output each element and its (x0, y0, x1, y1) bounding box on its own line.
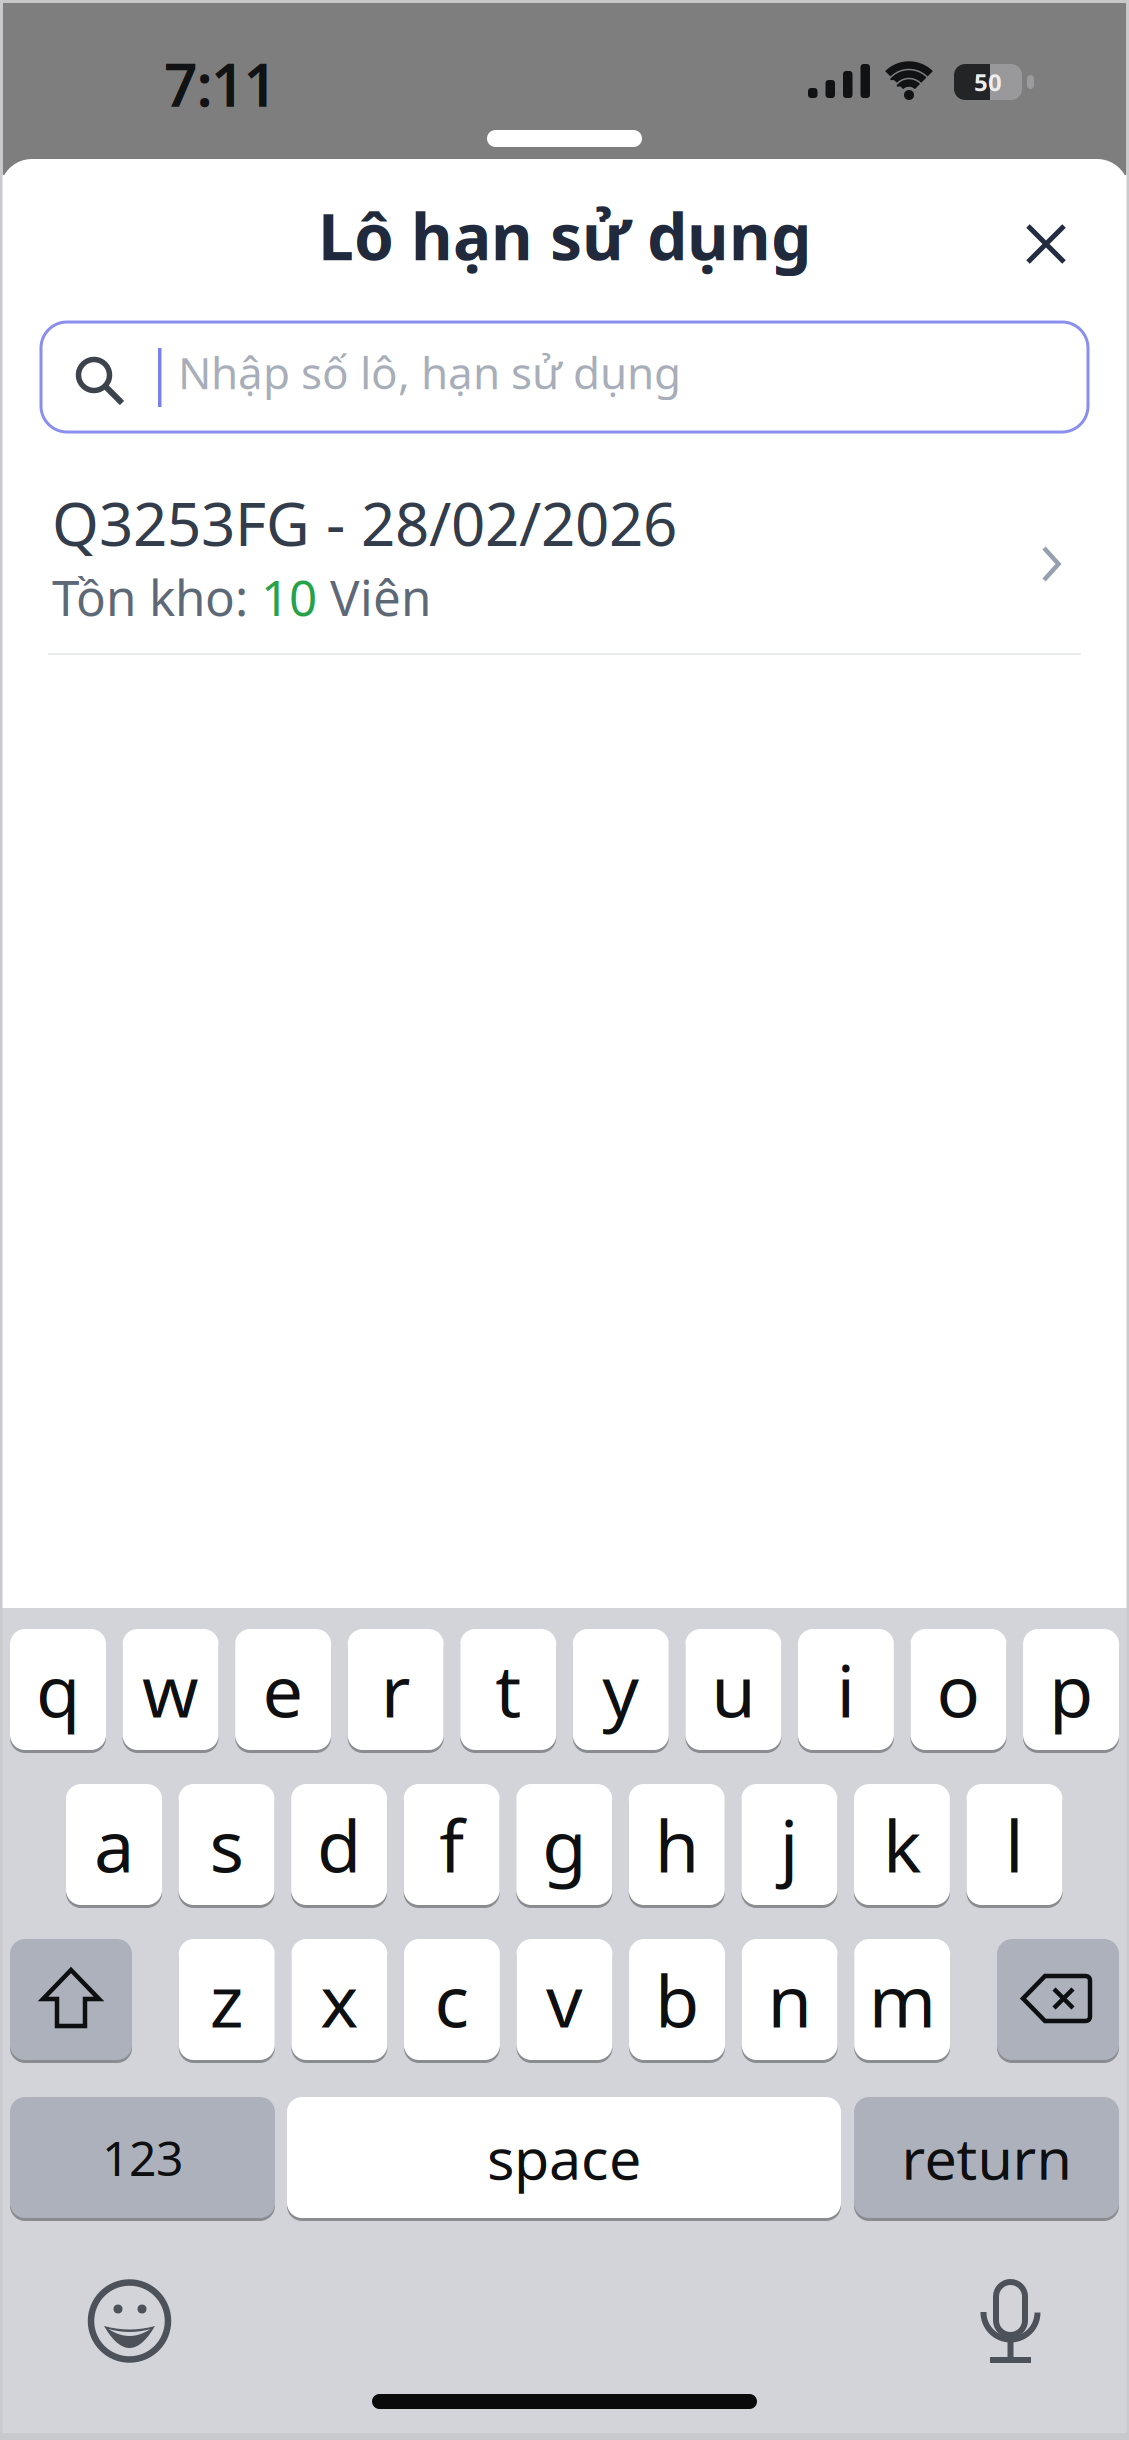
button[interactable]: i (798, 1629, 894, 1750)
staticText: 50 (974, 66, 1002, 98)
staticText: k (883, 1797, 921, 1892)
button[interactable]: m (854, 1939, 950, 2060)
button[interactable]: f (404, 1784, 500, 1905)
staticText: a (94, 1797, 134, 1892)
button[interactable]: Close (1002, 200, 1090, 288)
staticText: l (1005, 1797, 1024, 1892)
staticText: r (381, 1642, 411, 1737)
staticText: c (434, 1952, 469, 2047)
staticText: Q3253FG - 28/02/2026 (52, 483, 677, 563)
button[interactable]: Numbers (10, 2097, 275, 2218)
button[interactable]: k (854, 1784, 950, 1905)
button[interactable]: Dictate (966, 2276, 1054, 2364)
staticText: Tồn kho: (52, 564, 261, 629)
staticText: w (142, 1642, 199, 1737)
button[interactable]: r (348, 1629, 444, 1750)
staticText: p (1049, 1642, 1093, 1737)
button[interactable]: Q3253FG - 28/02/2026 (48, 482, 1129, 655)
staticText: d (317, 1797, 361, 1892)
staticText: q (36, 1642, 80, 1737)
staticText: 10 (261, 564, 317, 629)
staticText: f (439, 1797, 464, 1892)
button[interactable]: Delete (997, 1939, 1119, 2060)
staticText: space (487, 2119, 641, 2195)
button[interactable]: t (460, 1629, 556, 1750)
button[interactable]: y (573, 1629, 669, 1750)
button[interactable]: h (629, 1784, 725, 1905)
staticText: h (655, 1797, 699, 1892)
button[interactable]: e (235, 1629, 331, 1750)
button[interactable]: Emoji (85, 2277, 173, 2365)
button[interactable]: o (910, 1629, 1006, 1750)
staticText: Viên (317, 564, 431, 629)
button[interactable]: Shift (10, 1939, 132, 2060)
button[interactable]: n (742, 1939, 838, 2060)
button[interactable]: l (966, 1784, 1062, 1905)
staticText: x (320, 1952, 358, 2047)
staticText: Nhập số lô, hạn sử dụng (178, 343, 681, 401)
staticText: u (711, 1642, 755, 1737)
button[interactable]: x (291, 1939, 387, 2060)
button[interactable]: v (516, 1939, 612, 2060)
button[interactable]: Search (41, 322, 1088, 432)
staticText: o (936, 1642, 980, 1737)
button[interactable]: g (516, 1784, 612, 1905)
button[interactable]: d (291, 1784, 387, 1905)
button[interactable]: u (685, 1629, 781, 1750)
button[interactable]: z (179, 1939, 275, 2060)
button[interactable]: b (629, 1939, 725, 2060)
staticText: b (655, 1952, 699, 2047)
staticText: v (546, 1952, 583, 2047)
staticText: s (210, 1797, 244, 1892)
button[interactable]: a (66, 1784, 162, 1905)
button[interactable]: w (123, 1629, 219, 1750)
staticText: n (768, 1952, 812, 2047)
button[interactable]: q (10, 1629, 106, 1750)
staticText: j (780, 1797, 799, 1892)
button[interactable]: j (741, 1784, 837, 1905)
staticText: e (263, 1642, 304, 1737)
staticText: i (836, 1642, 855, 1737)
staticText: m (869, 1952, 936, 2047)
staticText: z (210, 1952, 244, 2047)
staticText: 7:11 (164, 45, 277, 123)
staticText: return (901, 2119, 1071, 2195)
staticText: t (495, 1642, 521, 1737)
button[interactable]: space (287, 2097, 841, 2218)
button[interactable]: c (404, 1939, 500, 2060)
button[interactable]: return (854, 2097, 1119, 2218)
button[interactable]: p (1023, 1629, 1119, 1750)
staticText: Lô hạn sử dụng (318, 193, 811, 278)
staticText: g (542, 1797, 586, 1892)
staticText: 123 (102, 2126, 183, 2189)
staticText: y (602, 1642, 639, 1737)
button[interactable]: s (179, 1784, 275, 1905)
